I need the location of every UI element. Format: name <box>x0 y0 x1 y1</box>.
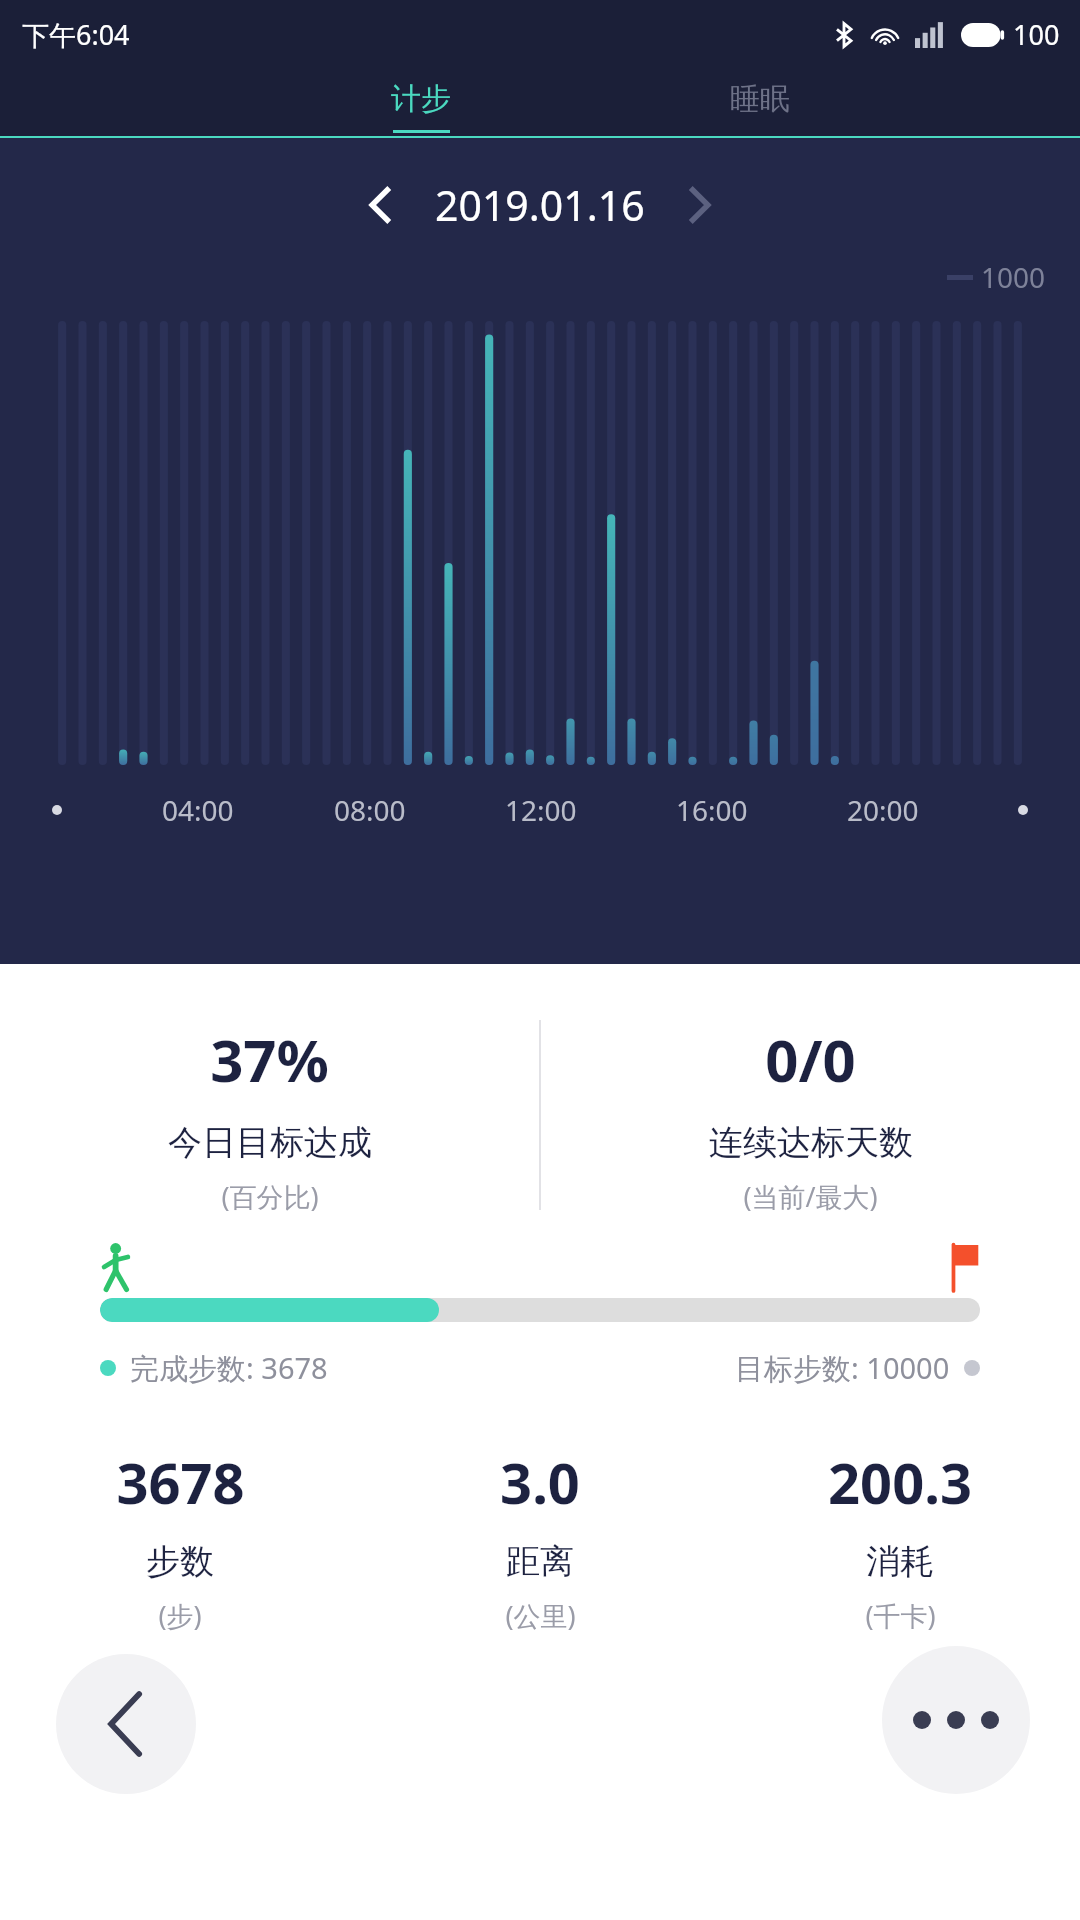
staticText: 12:00 <box>505 791 577 829</box>
staticText: 1000 <box>981 258 1046 296</box>
button[interactable]: Back <box>56 1654 196 1794</box>
staticText: 消耗 <box>866 1540 934 1583</box>
button[interactable]: 0/0 <box>541 1020 1080 1215</box>
button[interactable]: 3678 <box>0 1444 360 1634</box>
button[interactable]: Previous day <box>353 176 411 234</box>
staticText: 今日目标达成 <box>168 1121 372 1164</box>
staticText: 04:00 <box>162 791 234 829</box>
button[interactable]: Next day <box>669 176 727 234</box>
button[interactable]: 3.0 <box>360 1444 720 1634</box>
staticText: 完成步数: 3678 <box>130 1348 328 1388</box>
staticText: 0/0 <box>765 1020 856 1099</box>
staticText: 20:00 <box>847 791 919 829</box>
staticText: 3678 <box>116 1444 245 1520</box>
staticText: (步) <box>158 1597 202 1634</box>
staticText: (当前/最大) <box>743 1178 878 1215</box>
staticText: 2019.01.16 <box>435 177 645 233</box>
staticText: 200.3 <box>828 1444 972 1520</box>
staticText: 目标步数: 10000 <box>735 1348 950 1388</box>
staticText: 100 <box>1013 16 1060 53</box>
staticText: (百分比) <box>221 1178 319 1215</box>
staticText: 计步 <box>391 80 451 118</box>
staticText: 3.0 <box>500 1444 580 1520</box>
button[interactable]: 睡眠 <box>590 68 929 138</box>
staticText: 连续达标天数 <box>709 1121 913 1164</box>
staticText: 08:00 <box>334 791 406 829</box>
button[interactable]: 37% <box>0 1020 539 1215</box>
staticText: (公里) <box>505 1597 576 1634</box>
button[interactable]: 200.3 <box>720 1444 1080 1634</box>
button[interactable]: More options <box>882 1646 1030 1794</box>
staticText: 距离 <box>506 1540 574 1583</box>
staticText: (千卡) <box>865 1597 936 1634</box>
staticText: 16:00 <box>676 791 748 829</box>
button[interactable]: 计步 <box>251 68 590 138</box>
staticText: 下午6:04 <box>22 16 130 53</box>
staticText: 睡眠 <box>730 80 790 118</box>
staticText: 37% <box>210 1020 329 1099</box>
staticText: 步数 <box>146 1540 214 1583</box>
